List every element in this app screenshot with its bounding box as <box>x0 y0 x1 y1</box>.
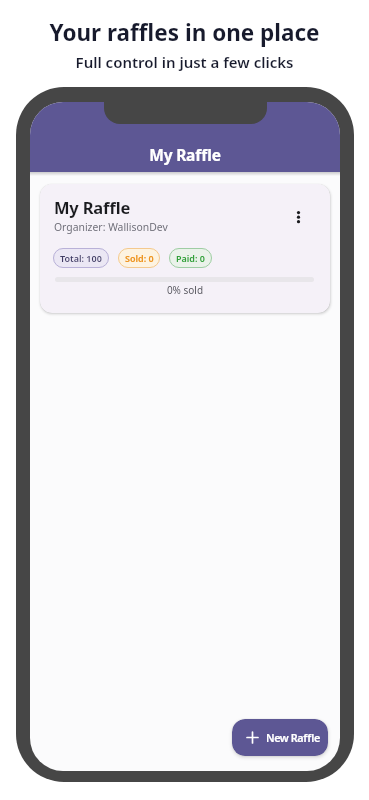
staticText: Total: 100 <box>60 252 102 264</box>
staticText: My Raffle <box>54 196 131 218</box>
button[interactable]: Sold: 0 <box>118 248 160 268</box>
staticText: Organizer: WallisonDev <box>54 220 168 234</box>
staticText: 0% sold <box>40 283 330 297</box>
button[interactable]: My Raffle <box>40 184 330 313</box>
button[interactable]: Total: 100 <box>53 248 109 268</box>
button[interactable]: Paid: 0 <box>169 248 212 268</box>
staticText: Full control in just a few clicks <box>0 52 369 72</box>
staticText: My Raffle <box>30 144 340 165</box>
staticText: New Raffle <box>266 730 320 745</box>
button[interactable] <box>284 201 312 229</box>
staticText: Paid: 0 <box>176 252 205 264</box>
staticText: Your raffles in one place <box>0 17 369 48</box>
button[interactable]: New Raffle <box>232 719 328 756</box>
staticText: Sold: 0 <box>125 252 154 264</box>
